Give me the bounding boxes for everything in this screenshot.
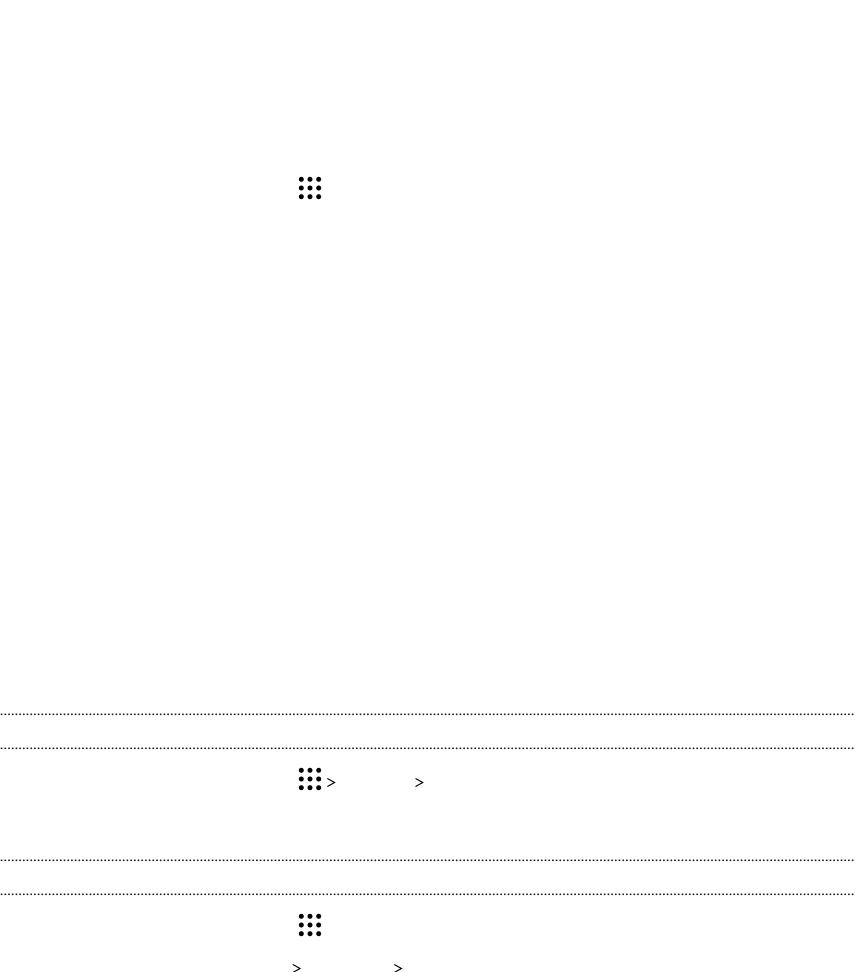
button[interactable]: Next: [394, 964, 402, 972]
button[interactable]: Apps: [298, 913, 322, 937]
button[interactable]: Next: [292, 964, 301, 972]
button[interactable]: Apps: [298, 176, 322, 200]
button[interactable]: Open item: [298, 767, 468, 791]
